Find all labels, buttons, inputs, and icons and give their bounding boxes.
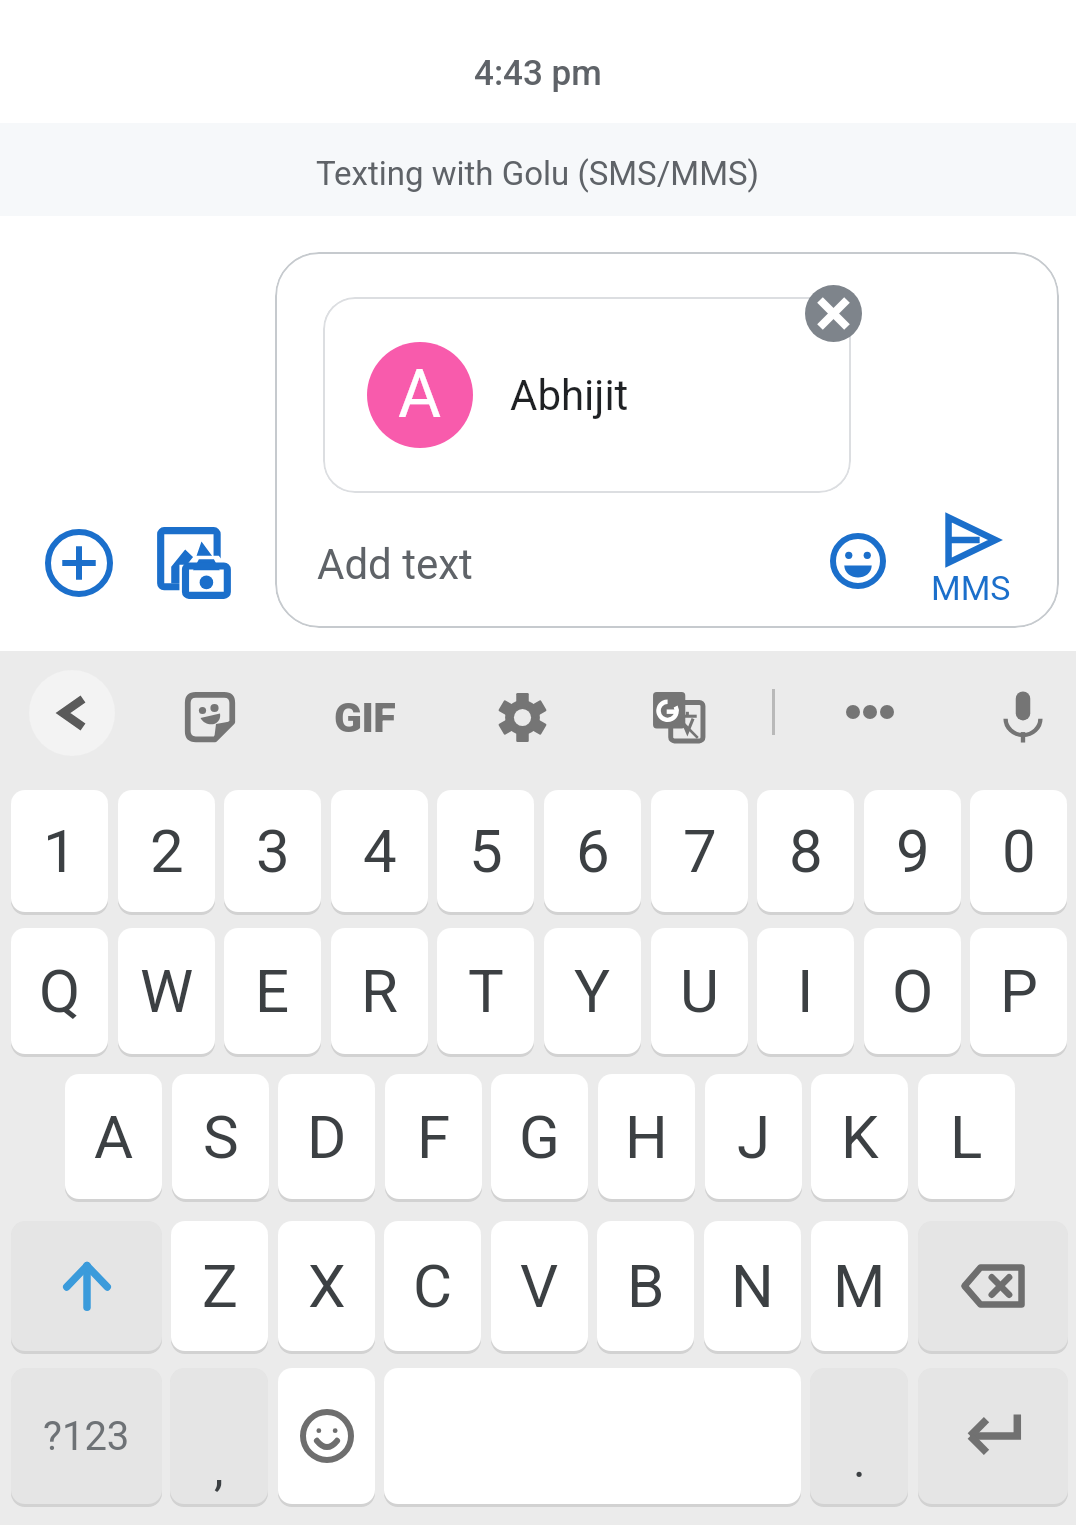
button[interactable]: M <box>811 1221 908 1351</box>
staticText: T <box>468 956 504 1026</box>
staticText: . <box>853 1432 866 1488</box>
button[interactable]: Keyboard tool <box>172 679 248 755</box>
staticText: P <box>1000 956 1038 1026</box>
button[interactable]: 6 <box>544 790 641 912</box>
button[interactable]: J <box>705 1074 802 1199</box>
button[interactable]: E <box>224 928 321 1054</box>
staticText: 3 <box>256 816 290 886</box>
button[interactable]: V <box>491 1221 588 1351</box>
staticText: H <box>625 1102 668 1172</box>
staticText: J <box>737 1102 771 1172</box>
staticText: 4:43 pm <box>474 53 602 94</box>
staticText: O <box>892 956 934 1026</box>
button[interactable]: T <box>437 928 534 1054</box>
button[interactable]: W <box>118 928 215 1054</box>
staticText: X <box>308 1251 346 1321</box>
button[interactable]: Emoji keyboard <box>278 1368 375 1504</box>
staticText: I <box>797 956 814 1026</box>
button[interactable]: Symbols <box>11 1368 162 1504</box>
staticText: Q <box>39 956 81 1026</box>
button[interactable]: Keyboard tool <box>640 679 716 755</box>
button[interactable]: Enter <box>918 1368 1068 1504</box>
button[interactable]: O <box>864 928 961 1054</box>
staticText: S <box>203 1102 239 1172</box>
staticText: 1 <box>43 816 77 886</box>
button[interactable]: U <box>651 928 748 1054</box>
button[interactable]: Photos and camera <box>155 524 233 602</box>
button[interactable]: Back <box>29 670 115 756</box>
staticText: 6 <box>576 816 610 886</box>
button[interactable]: Z <box>171 1221 268 1351</box>
staticText: U <box>680 956 719 1026</box>
staticText: Texting with Golu (SMS/MMS) <box>316 154 760 193</box>
button[interactable]: L <box>918 1074 1015 1199</box>
staticText: V <box>520 1251 559 1321</box>
button[interactable]: Period <box>810 1368 908 1504</box>
staticText: F <box>417 1102 451 1172</box>
button[interactable]: F <box>385 1074 482 1199</box>
button[interactable]: D <box>278 1074 375 1199</box>
button[interactable]: B <box>597 1221 694 1351</box>
button[interactable]: 8 <box>757 790 854 912</box>
staticText: 9 <box>896 816 930 886</box>
button[interactable]: S <box>172 1074 269 1199</box>
button[interactable]: K <box>811 1074 908 1199</box>
staticText: 7 <box>683 816 717 886</box>
button[interactable]: 3 <box>224 790 321 912</box>
button[interactable]: Shift <box>11 1221 162 1351</box>
staticText: D <box>307 1102 347 1172</box>
staticText: L <box>950 1102 983 1172</box>
staticText: W <box>140 956 194 1026</box>
staticText: 0 <box>1002 816 1036 886</box>
staticText: 2 <box>150 816 184 886</box>
button[interactable]: G <box>491 1074 588 1199</box>
button[interactable]: 0 <box>970 790 1067 912</box>
button[interactable]: I <box>757 928 854 1054</box>
staticText: M <box>833 1251 886 1321</box>
staticText: A <box>94 1102 134 1172</box>
staticText: A <box>398 356 442 433</box>
button[interactable]: 9 <box>864 790 961 912</box>
button[interactable]: Remove recipient <box>805 285 862 342</box>
button[interactable]: Backspace <box>918 1221 1068 1351</box>
staticText: , <box>214 1440 224 1496</box>
button[interactable]: H <box>598 1074 695 1199</box>
button[interactable]: Q <box>11 928 108 1054</box>
button[interactable]: Comma <box>170 1368 268 1504</box>
staticText: B <box>627 1251 665 1321</box>
staticText: 4 <box>363 816 397 886</box>
button[interactable]: 1 <box>11 790 108 912</box>
button[interactable]: A <box>323 297 851 493</box>
button[interactable]: C <box>384 1221 481 1351</box>
button[interactable]: Keyboard tool <box>484 679 560 755</box>
staticText: Abhijit <box>510 371 629 420</box>
button[interactable]: Add attachment <box>43 527 115 599</box>
button[interactable]: Emoji <box>826 529 890 593</box>
button[interactable]: P <box>970 928 1067 1054</box>
staticText: G <box>519 1102 560 1172</box>
button[interactable]: MMS <box>912 516 1030 616</box>
staticText: 8 <box>789 816 823 886</box>
staticText: Add text <box>317 540 473 589</box>
button[interactable]: 4 <box>331 790 428 912</box>
button[interactable]: A <box>65 1074 162 1199</box>
staticText: MMS <box>931 568 1011 608</box>
staticText: C <box>413 1251 453 1321</box>
staticText: K <box>841 1102 879 1172</box>
button[interactable]: Keyboard tool <box>985 679 1061 755</box>
button[interactable]: X <box>278 1221 375 1351</box>
button[interactable]: Y <box>544 928 641 1054</box>
staticText: ?123 <box>43 1413 130 1460</box>
staticText: N <box>731 1251 774 1321</box>
button[interactable]: 5 <box>437 790 534 912</box>
button[interactable]: 7 <box>651 790 748 912</box>
button[interactable]: 2 <box>118 790 215 912</box>
button[interactable]: GIF <box>322 677 408 763</box>
button[interactable]: R <box>331 928 428 1054</box>
staticText: Z <box>202 1251 238 1321</box>
button[interactable]: More options <box>832 674 908 750</box>
staticText: Y <box>574 956 611 1026</box>
button[interactable]: N <box>704 1221 801 1351</box>
staticText: GIF <box>334 694 396 742</box>
